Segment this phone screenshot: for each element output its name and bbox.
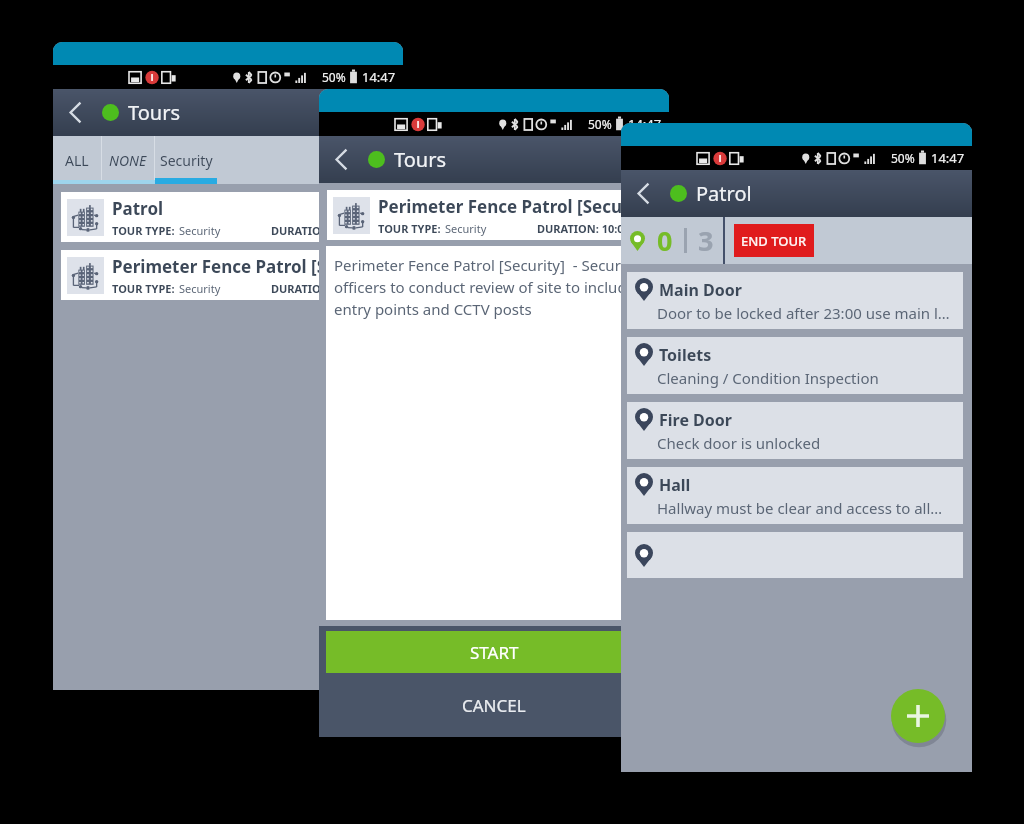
staticText: NONE xyxy=(109,151,147,170)
staticText: DURATION: 10:0 xyxy=(537,221,624,236)
staticText: 50% xyxy=(588,116,612,132)
staticText: 0 xyxy=(657,222,673,259)
staticText: 3 xyxy=(698,222,714,259)
staticText: Cleaning / Condition Inspection xyxy=(657,368,879,388)
staticText: Hallway must be clear and access to all… xyxy=(657,498,943,518)
button[interactable]: NONE xyxy=(102,136,154,184)
button[interactable]: Perimeter Fence Patrol [Securit xyxy=(327,190,661,240)
button[interactable]: Perimeter Fence Patrol [Se xyxy=(61,250,395,300)
staticText: Toilets xyxy=(659,344,712,366)
staticText: 14:47 xyxy=(362,68,396,86)
button[interactable]: END TOUR xyxy=(734,224,814,257)
staticText: ALL xyxy=(65,151,89,170)
staticText: Security xyxy=(160,151,213,170)
button[interactable] xyxy=(627,532,963,578)
button[interactable]: Main Door xyxy=(627,272,963,329)
staticText: Security xyxy=(179,223,221,238)
button[interactable]: Back xyxy=(319,136,363,183)
staticText: Fire Door xyxy=(659,409,732,431)
staticText: DURATION: 10:0 xyxy=(271,281,358,296)
button[interactable]: ALL xyxy=(53,136,101,184)
button[interactable]: Back xyxy=(621,170,665,217)
button[interactable]: Toilets xyxy=(627,337,963,394)
staticText: Hall xyxy=(659,474,691,496)
staticText: TOUR TYPE: xyxy=(378,221,441,236)
staticText: DURATION: 05:0 xyxy=(271,223,358,238)
staticText: Main Door xyxy=(659,279,742,301)
staticText: Perimeter Fence Patrol [Se xyxy=(112,255,337,278)
staticText: 50% xyxy=(891,150,915,166)
button[interactable]: START xyxy=(326,631,662,673)
staticText: Door to be locked after 23:00 use main l… xyxy=(657,303,950,323)
staticText: END TOUR xyxy=(741,232,807,250)
button[interactable]: Patrol xyxy=(61,192,395,242)
staticText: Tours xyxy=(128,99,181,126)
staticText: Perimeter Fence Patrol [Securit xyxy=(378,195,643,218)
button[interactable]: Fire Door xyxy=(627,402,963,459)
staticText: Security xyxy=(179,281,221,296)
staticText: Perimeter Fence Patrol [Security] - Secu… xyxy=(334,255,654,320)
button[interactable]: Security xyxy=(155,136,217,184)
staticText: Tours xyxy=(394,146,447,173)
button[interactable]: Back xyxy=(53,89,97,136)
button[interactable]: Add checkpoint xyxy=(891,689,945,743)
staticText: Patrol xyxy=(112,197,164,220)
staticText: START xyxy=(470,641,519,664)
staticText: TOUR TYPE: xyxy=(112,223,175,238)
staticText: CANCEL xyxy=(462,694,526,717)
staticText: Patrol xyxy=(696,180,752,207)
button[interactable]: Hall xyxy=(627,467,963,524)
staticText: Check door is unlocked xyxy=(657,433,821,453)
button[interactable]: CANCEL xyxy=(319,673,669,737)
staticText: 50% xyxy=(322,69,346,85)
staticText: 14:47 xyxy=(931,149,965,167)
staticText: Security xyxy=(445,221,487,236)
staticText: TOUR TYPE: xyxy=(112,281,175,296)
staticText: 14:47 xyxy=(628,115,662,133)
